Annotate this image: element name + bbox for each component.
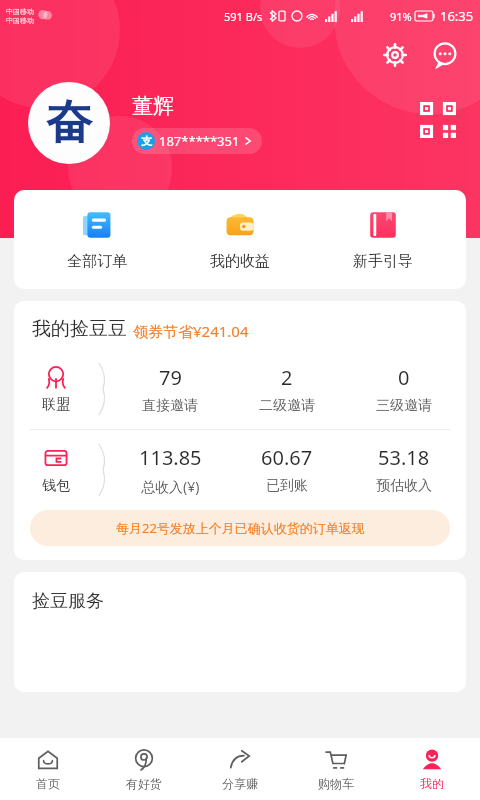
- staticText: 79: [159, 364, 182, 391]
- button[interactable]: 79: [115, 364, 225, 415]
- button[interactable]: 分享赚: [192, 738, 288, 800]
- staticText: 三级邀请: [376, 397, 432, 415]
- staticText: 113.85: [139, 444, 202, 471]
- button[interactable]: 联盟: [14, 364, 98, 414]
- staticText: 董辉: [132, 93, 174, 119]
- staticText: 全部订单: [67, 252, 127, 271]
- button[interactable]: QR code: [418, 100, 458, 140]
- staticText: 53.18: [378, 444, 430, 471]
- staticText: 我的捡豆豆: [32, 317, 127, 341]
- staticText: 有好货: [126, 776, 162, 791]
- staticText: 首页: [36, 776, 60, 791]
- button[interactable]: 全部订单: [37, 206, 157, 273]
- button[interactable]: Avatar: [28, 82, 110, 164]
- button[interactable]: 0: [349, 364, 459, 415]
- staticText: 每月22号发放上个月已确认收货的订单返现: [116, 519, 365, 537]
- staticText: 联盟: [42, 396, 70, 414]
- button[interactable]: 113.85: [115, 444, 225, 496]
- button[interactable]: 60.67: [232, 444, 342, 495]
- staticText: 支: [141, 134, 152, 148]
- staticText: 二级邀请: [259, 397, 315, 415]
- button[interactable]: 首页: [0, 738, 96, 800]
- staticText: 直接邀请: [142, 397, 198, 415]
- staticText: 分享赚: [222, 776, 258, 791]
- staticText: 新手引导: [353, 252, 413, 271]
- staticText: 总收入(¥): [141, 477, 200, 496]
- staticText: 91%: [390, 9, 412, 24]
- button[interactable]: 每月22号发放上个月已确认收货的订单返现: [30, 510, 450, 546]
- staticText: 187*****351: [159, 132, 240, 150]
- button[interactable]: 53.18: [349, 444, 459, 495]
- staticText: 60.67: [261, 444, 313, 471]
- staticText: 中国移动: [6, 7, 34, 16]
- staticText: 我的: [420, 776, 444, 791]
- staticText: 2: [281, 364, 293, 391]
- button[interactable]: Settings: [378, 38, 412, 72]
- button[interactable]: 有好货: [96, 738, 192, 800]
- staticText: 购物车: [318, 776, 354, 791]
- button[interactable]: 新手引导: [323, 206, 443, 273]
- button[interactable]: Messages: [428, 38, 462, 72]
- staticText: 0: [398, 364, 410, 391]
- button[interactable]: 我的: [384, 738, 480, 800]
- button[interactable]: 钱包: [14, 445, 98, 495]
- staticText: 奋: [46, 94, 92, 152]
- button[interactable]: 购物车: [288, 738, 384, 800]
- button[interactable]: 支: [132, 128, 262, 154]
- staticText: 16:35: [440, 7, 474, 25]
- staticText: 钱包: [42, 477, 70, 495]
- staticText: 已到账: [266, 477, 308, 495]
- staticText: 591 B/s: [224, 9, 263, 24]
- button[interactable]: 我的收益: [180, 206, 300, 273]
- staticText: 我的收益: [210, 252, 270, 271]
- staticText: 领券节省¥241.04: [133, 321, 249, 341]
- button[interactable]: 2: [232, 364, 342, 415]
- staticText: 预估收入: [376, 477, 432, 495]
- staticText: 捡豆服务: [32, 590, 104, 613]
- staticText: 中国移动: [6, 16, 34, 25]
